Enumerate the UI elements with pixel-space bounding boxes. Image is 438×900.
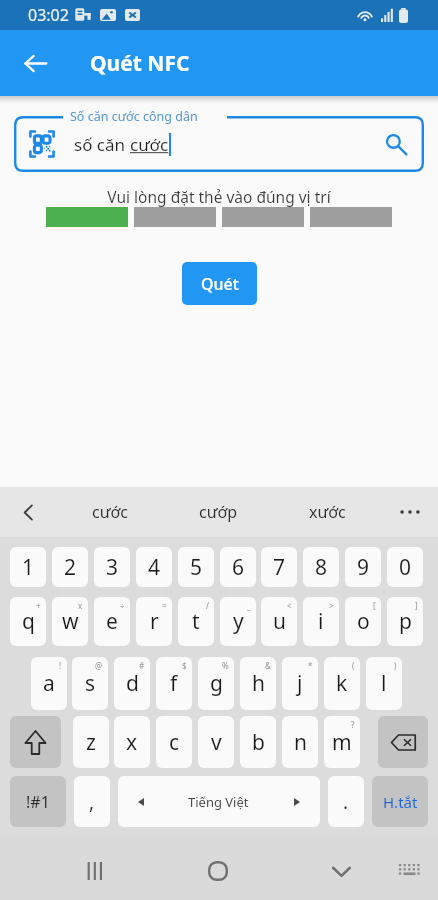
button[interactable]: o (345, 597, 381, 646)
button[interactable]: q (10, 597, 46, 646)
staticText: b (252, 728, 265, 757)
button[interactable]: n (282, 716, 318, 768)
staticText: ? (351, 719, 355, 730)
staticText: H.tắt (383, 792, 418, 812)
button[interactable]: l (366, 657, 402, 710)
staticText: e (106, 607, 118, 636)
staticText: # (139, 660, 145, 671)
staticText: z (86, 728, 96, 757)
button[interactable]: 7 (261, 547, 297, 587)
staticText: ) (394, 660, 397, 671)
button[interactable]: 5 (178, 547, 214, 587)
button[interactable]: Back (11, 39, 59, 87)
button[interactable]: H.tắt (372, 776, 428, 827)
staticText: k (336, 669, 348, 698)
staticText: $ (182, 660, 187, 671)
staticText: 8 (315, 553, 328, 582)
button[interactable]: số căn (14, 116, 424, 172)
button[interactable]: b (240, 716, 276, 768)
button[interactable]: cướp (164, 487, 273, 537)
staticText: * (308, 660, 313, 671)
staticText: p (399, 607, 412, 636)
staticText: 2 (64, 553, 77, 582)
staticText: = (162, 600, 167, 611)
button[interactable]: Back (317, 847, 365, 895)
button[interactable]: Quét (182, 262, 257, 305)
button[interactable]: c (156, 716, 192, 768)
staticText: f (170, 669, 178, 698)
button[interactable]: m (324, 716, 360, 768)
button[interactable]: f (156, 657, 192, 710)
button[interactable]: e (94, 597, 130, 646)
staticText: q (22, 607, 35, 636)
button[interactable]: 4 (136, 547, 172, 587)
staticText: Vui lòng đặt thẻ vào đúng vị trí (0, 186, 438, 207)
button[interactable]: 8 (303, 547, 339, 587)
staticText: y (233, 607, 244, 636)
staticText: u (273, 607, 286, 636)
button[interactable]: a (31, 657, 67, 710)
button[interactable]: s (72, 657, 108, 710)
button[interactable]: !#1 (10, 776, 66, 827)
button[interactable]: y (220, 597, 256, 646)
button[interactable]: p (387, 597, 423, 646)
button[interactable]: h (240, 657, 276, 710)
button[interactable]: 0 (387, 547, 423, 587)
staticText: xước (309, 501, 346, 523)
staticText: ( (352, 660, 355, 671)
button[interactable]: d (114, 657, 150, 710)
button[interactable]: Space, Tiếng Việt (118, 776, 320, 827)
button[interactable]: xước (273, 487, 382, 537)
button[interactable]: 1 (10, 547, 46, 587)
staticText: t (192, 607, 200, 636)
button[interactable]: j (282, 657, 318, 710)
button[interactable]: Previous suggestions (0, 487, 56, 537)
staticText: d (126, 669, 139, 698)
staticText: r (150, 607, 159, 636)
staticText: i (318, 607, 324, 636)
button[interactable]: r (136, 597, 172, 646)
staticText: 4 (148, 553, 161, 582)
button[interactable]: Backspace (378, 716, 428, 768)
button[interactable]: Home (194, 847, 242, 895)
staticText: Quét (201, 273, 239, 295)
staticText: n (294, 728, 307, 757)
staticText: 7 (273, 553, 286, 582)
button[interactable]: x (114, 716, 150, 768)
button[interactable]: Shift (10, 716, 61, 768)
button[interactable]: More options (382, 487, 438, 537)
button[interactable]: u (261, 597, 297, 646)
button[interactable]: , (74, 776, 110, 827)
button[interactable]: g (198, 657, 234, 710)
staticText: < (287, 600, 292, 611)
staticText: @ (95, 660, 103, 671)
staticText: Quét NFC (90, 49, 190, 78)
button[interactable]: 9 (345, 547, 381, 587)
button[interactable]: k (324, 657, 360, 710)
staticText: h (252, 669, 265, 698)
button[interactable]: 3 (94, 547, 130, 587)
button[interactable]: cước (56, 487, 164, 537)
staticText: + (36, 600, 41, 611)
button[interactable]: 2 (52, 547, 88, 587)
button[interactable]: Recent apps (71, 847, 119, 895)
button[interactable]: 6 (220, 547, 256, 587)
button[interactable]: . (328, 776, 364, 827)
staticText: 3 (106, 553, 119, 582)
staticText: c (169, 728, 180, 757)
button[interactable]: t (178, 597, 214, 646)
staticText: g (210, 669, 223, 698)
button[interactable]: v (198, 716, 234, 768)
staticText: l (381, 669, 387, 698)
button[interactable]: Search (374, 122, 418, 166)
staticText: số căn (74, 133, 130, 156)
button[interactable]: Hide keyboard (385, 847, 433, 895)
button[interactable]: w (52, 597, 88, 646)
staticText: 9 (357, 553, 370, 582)
button[interactable]: z (73, 716, 109, 768)
button[interactable]: i (303, 597, 339, 646)
staticText: v (211, 728, 222, 757)
staticText: a (43, 669, 55, 698)
staticText: Tiếng Việt (188, 793, 249, 811)
staticText: o (357, 607, 370, 636)
